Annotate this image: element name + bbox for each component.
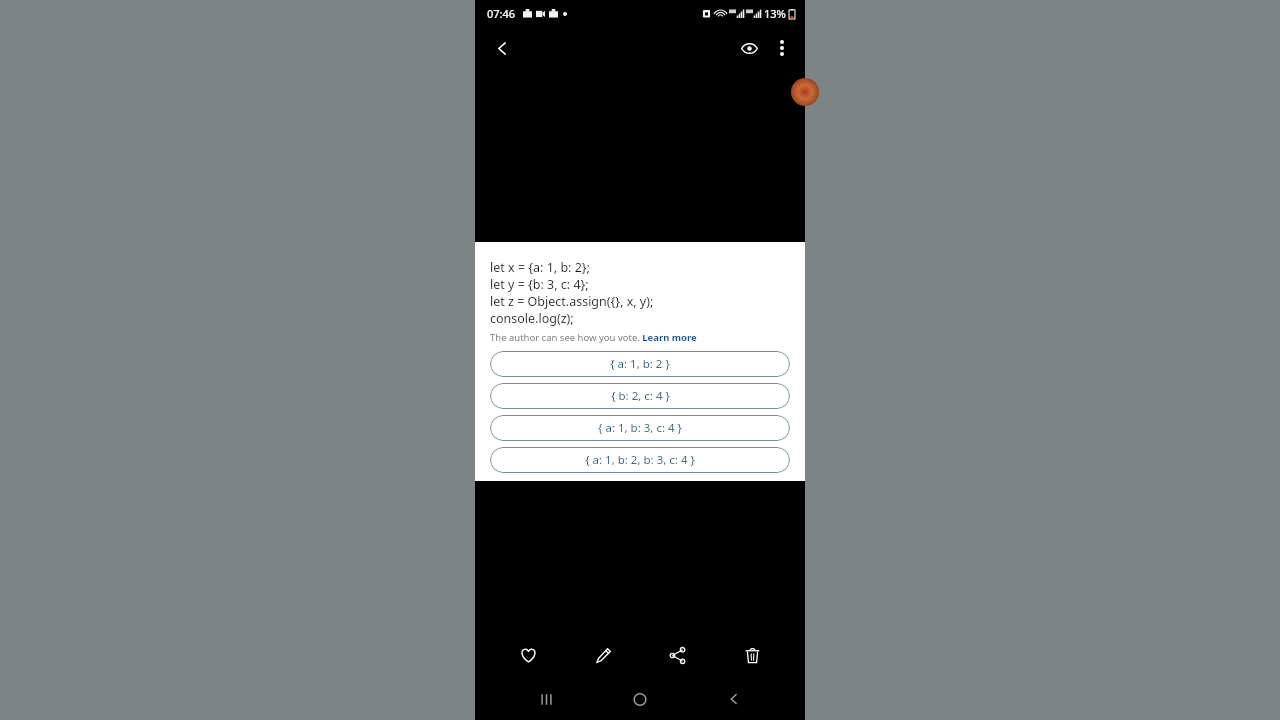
- staticText: let y = {b: 3, c: 4};: [490, 276, 589, 293]
- staticText: { a: 1, b: 2 }: [610, 356, 670, 372]
- button[interactable]: Like: [506, 633, 550, 677]
- staticText: { b: 2, c: 4 }: [611, 388, 670, 404]
- staticText: 13%: [764, 6, 786, 21]
- button[interactable]: Home: [617, 678, 663, 720]
- button[interactable]: More options: [767, 33, 797, 63]
- staticText: console.log(z);: [490, 310, 574, 327]
- button[interactable]: Back: [711, 678, 757, 720]
- button[interactable]: Recents: [523, 678, 569, 720]
- button[interactable]: { b: 2, c: 4 }: [490, 383, 790, 409]
- staticText: The author can see how you vote. Learn m…: [490, 331, 697, 344]
- staticText: let z = Object.assign({}, x, y);: [490, 293, 654, 310]
- button[interactable]: Preview: [733, 32, 765, 64]
- button[interactable]: { a: 1, b: 2, b: 3, c: 4 }: [490, 447, 790, 473]
- staticText: { a: 1, b: 2, b: 3, c: 4 }: [585, 452, 695, 468]
- button[interactable]: Edit: [581, 633, 625, 677]
- button[interactable]: Delete: [730, 633, 774, 677]
- button[interactable]: { a: 1, b: 2 }: [490, 351, 790, 377]
- staticText: 07:46: [487, 6, 516, 21]
- button[interactable]: { a: 1, b: 3, c: 4 }: [490, 415, 790, 441]
- button[interactable]: Share: [655, 633, 699, 677]
- button[interactable]: Back: [487, 33, 517, 63]
- staticText: { a: 1, b: 3, c: 4 }: [598, 420, 682, 436]
- staticText: let x = {a: 1, b: 2};: [490, 259, 590, 276]
